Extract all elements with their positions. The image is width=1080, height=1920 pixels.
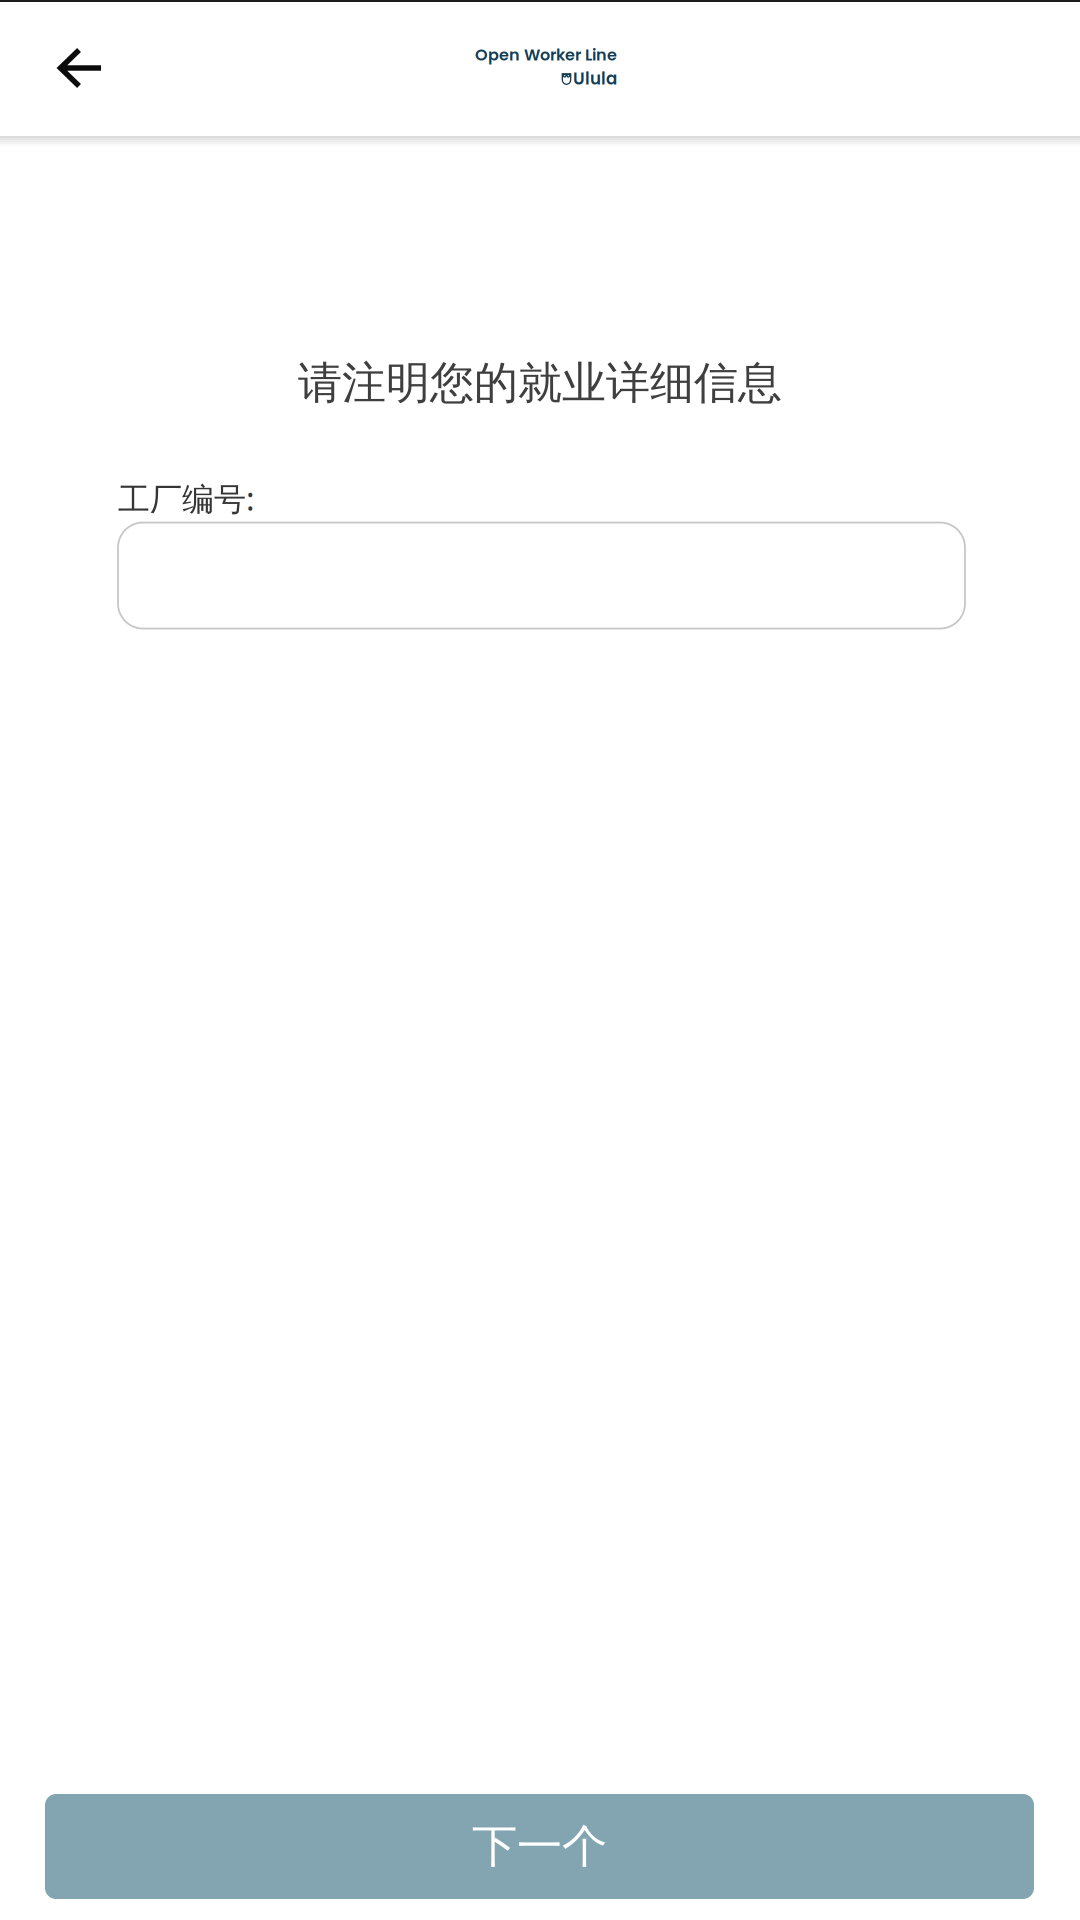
staticText: 下一个 bbox=[472, 1819, 607, 1874]
staticText: 工厂编号: bbox=[118, 477, 255, 519]
staticText: Open Worker Line bbox=[475, 44, 617, 66]
button[interactable]: Back bbox=[0, 7, 123, 131]
staticText: Ulula bbox=[573, 67, 617, 90]
staticText: 请注明您的就业详细信息 bbox=[298, 356, 782, 410]
button[interactable]: 下一个 bbox=[45, 1794, 1034, 1899]
